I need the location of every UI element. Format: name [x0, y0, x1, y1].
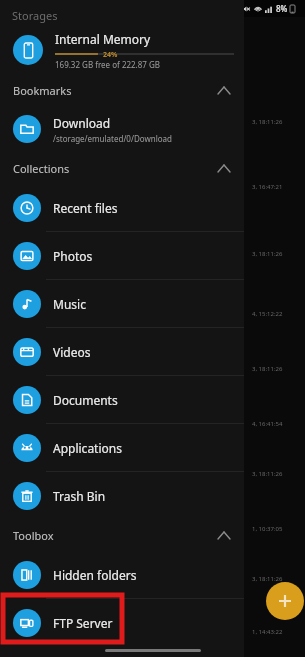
staticText: 8%: [276, 3, 288, 14]
staticText: Trash Bin: [53, 488, 106, 504]
staticText: Internal Memory: [55, 31, 151, 47]
staticText: 17:45: [14, 3, 35, 14]
button[interactable]: Internal Memory: [0, 26, 244, 74]
button[interactable]: Music: [0, 280, 244, 327]
staticText: 3, 18:11:26: [252, 250, 283, 258]
button[interactable]: FTP Server: [0, 599, 244, 646]
staticText: /storage/emulated/0/Download: [53, 133, 172, 144]
staticText: 3, 18:11:26: [252, 118, 283, 126]
button[interactable]: Collections: [0, 152, 244, 184]
staticText: Storages: [12, 8, 58, 23]
staticText: 169.32 GB free of 222.87 GB: [55, 59, 161, 70]
staticText: Download: [53, 115, 111, 131]
staticText: Hidden folders: [53, 567, 137, 583]
staticText: Videos: [53, 344, 91, 360]
button[interactable]: Recent files: [0, 184, 244, 231]
button[interactable]: Add: [266, 582, 304, 620]
staticText: 1, 10:37:05: [252, 525, 283, 533]
button[interactable]: Photos: [0, 232, 244, 279]
button[interactable]: Videos: [0, 328, 244, 375]
button[interactable]: Applications: [0, 424, 244, 471]
staticText: Documents: [53, 392, 118, 408]
staticText: 24%: [103, 50, 118, 57]
staticText: FTP Server: [53, 615, 113, 631]
button[interactable]: Download: [0, 106, 244, 152]
staticText: Collections: [13, 161, 70, 176]
staticText: Bookmarks: [13, 83, 72, 98]
button[interactable]: Bookmarks: [0, 74, 244, 106]
staticText: 3, 18:11:26: [252, 470, 283, 478]
button[interactable]: Hidden folders: [0, 551, 244, 598]
staticText: Recent files: [53, 200, 118, 216]
staticText: 4, 16:41:54: [252, 420, 283, 428]
staticText: Applications: [53, 440, 122, 456]
button[interactable]: Trash Bin: [0, 472, 244, 519]
button[interactable]: Toolbox: [0, 519, 244, 551]
staticText: 1, 14:43:22: [252, 628, 283, 636]
staticText: 3, 18:11:26: [252, 365, 283, 373]
staticText: 3, 16:47:21: [252, 183, 283, 191]
staticText: Music: [53, 296, 86, 312]
staticText: 4, 15:12:22: [252, 310, 283, 318]
staticText: 3, 18:11:26: [252, 575, 283, 583]
staticText: Photos: [53, 248, 93, 264]
button[interactable]: Documents: [0, 376, 244, 423]
staticText: Toolbox: [13, 528, 54, 543]
